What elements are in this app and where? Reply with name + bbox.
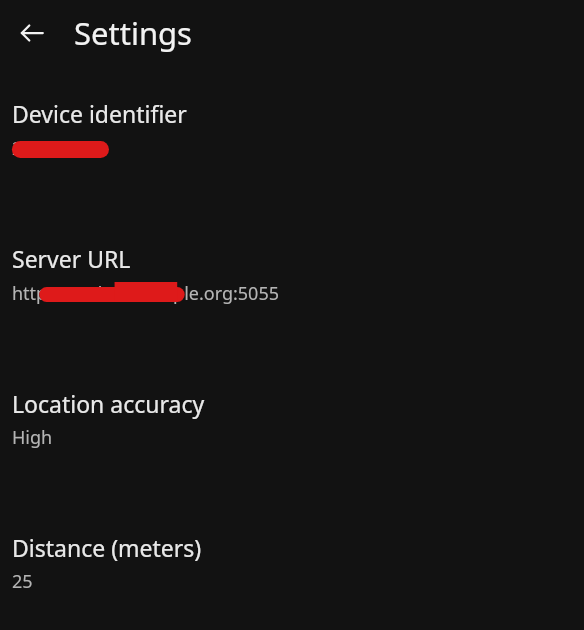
staticText: High <box>12 425 53 450</box>
staticText: Location accuracy <box>12 388 205 419</box>
staticText: http://tracker.example.org:5055 <box>12 281 280 306</box>
staticText: 255916 <box>12 136 74 161</box>
staticText: Distance (meters) <box>12 532 202 563</box>
button[interactable]: Location accuracy <box>0 388 584 450</box>
button[interactable]: Back <box>6 7 58 59</box>
staticText: Settings <box>74 12 192 54</box>
button[interactable]: Device identifier <box>0 98 584 161</box>
button[interactable]: Distance (meters) <box>0 532 584 594</box>
staticText: 25 <box>12 569 33 594</box>
staticText: Server URL <box>12 243 131 274</box>
button[interactable]: Server URL <box>0 243 584 306</box>
staticText: Device identifier <box>12 98 187 129</box>
